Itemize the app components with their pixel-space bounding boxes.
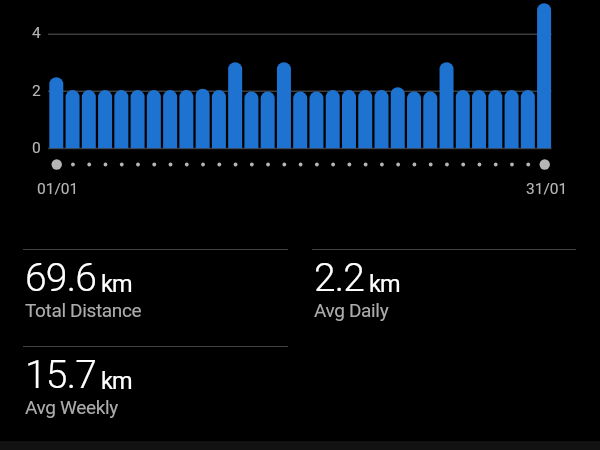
staticText: Total Distance bbox=[25, 299, 142, 321]
staticText: 4 bbox=[32, 24, 41, 42]
staticText: 2.2 bbox=[314, 255, 365, 301]
button[interactable]: 69.6 bbox=[23, 249, 288, 323]
staticText: 01/01 bbox=[37, 180, 79, 198]
staticText: 31/01 bbox=[526, 180, 568, 198]
staticText: 0 bbox=[32, 139, 41, 157]
staticText: Avg Weekly bbox=[25, 396, 118, 418]
staticText: km bbox=[101, 270, 132, 298]
staticText: 69.6 bbox=[25, 255, 97, 301]
staticText: 15.7 bbox=[25, 352, 97, 398]
button[interactable]: 2.2 bbox=[312, 249, 576, 323]
staticText: km bbox=[369, 270, 400, 298]
button[interactable]: 15.7 bbox=[23, 346, 288, 420]
staticText: 2 bbox=[32, 82, 41, 100]
staticText: km bbox=[101, 367, 132, 395]
staticText: Avg Daily bbox=[314, 299, 389, 321]
